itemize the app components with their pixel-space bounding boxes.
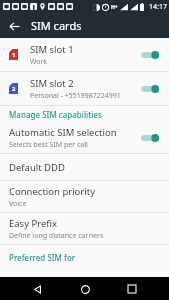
staticText: Selects best SIM per call xyxy=(9,140,88,150)
staticText: Personal - +5519987224991 xyxy=(30,91,121,101)
button[interactable]: Automatic SIM selection xyxy=(0,122,169,153)
staticText: 14:17 xyxy=(149,2,167,12)
staticText: 2 xyxy=(12,85,16,93)
button[interactable]: Back xyxy=(5,17,23,35)
button[interactable]: 2 xyxy=(0,72,169,105)
staticText: H+ xyxy=(111,4,118,11)
staticText: SIM slot 1 xyxy=(30,43,74,56)
staticText: Automatic SIM selection xyxy=(9,126,117,139)
staticText: Voice xyxy=(9,199,27,209)
staticText: Preferred SIM for xyxy=(9,252,76,263)
button[interactable]: Home xyxy=(74,278,96,300)
staticText: Default DDD xyxy=(9,161,65,174)
staticText: 1 xyxy=(12,51,16,59)
staticText: Easy Prefix xyxy=(9,217,58,230)
staticText: Manage SIM capabilities xyxy=(9,109,102,120)
button[interactable]: Easy Prefix xyxy=(0,213,169,244)
staticText: Define long distance carriers xyxy=(9,231,104,241)
button[interactable]: Connection priority xyxy=(0,181,169,212)
staticText: Work xyxy=(30,57,48,67)
button[interactable]: Back xyxy=(26,278,48,300)
staticText: SIM slot 2 xyxy=(30,77,74,90)
button[interactable]: 1 xyxy=(0,38,169,71)
staticText: SIM cards xyxy=(31,18,82,33)
staticText: Connection priority xyxy=(9,185,95,198)
button[interactable]: Default DDD xyxy=(0,154,169,180)
button[interactable]: Recents xyxy=(121,278,143,300)
